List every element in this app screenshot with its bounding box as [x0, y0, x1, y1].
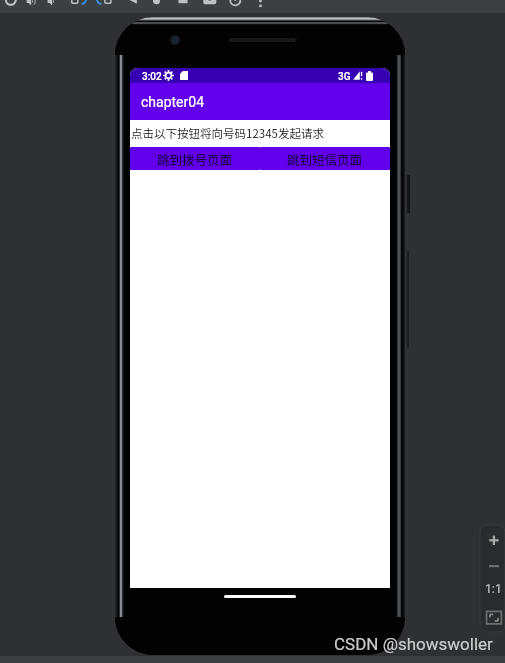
button[interactable]: 跳到拨号页面 [130, 147, 260, 170]
staticText: 3G [338, 71, 351, 83]
button[interactable]: Power [2, 0, 20, 13]
staticText: 跳到短信页面 [287, 150, 363, 168]
button[interactable]: Zoom out [485, 557, 503, 575]
staticText: CSDN @showswoller [334, 634, 493, 654]
button[interactable]: Record [226, 0, 244, 13]
staticText: 点击以下按钮将向号码12345发起请求 [131, 125, 324, 142]
button[interactable]: Screenshot [201, 0, 219, 13]
button[interactable]: Volume up [22, 0, 40, 13]
button[interactable]: Volume down [43, 0, 61, 13]
staticText: chapter04 [141, 94, 204, 110]
button[interactable]: 跳到短信页面 [260, 147, 390, 170]
staticText: 3:02 [142, 71, 162, 83]
button[interactable]: 1:1 [483, 580, 504, 597]
button[interactable]: Rotate left [70, 0, 88, 13]
button[interactable]: Fit to screen [486, 611, 502, 625]
button[interactable]: Zoom in [485, 531, 503, 549]
button[interactable]: More [252, 0, 270, 13]
button[interactable]: Back [123, 0, 141, 13]
button[interactable]: Overview [174, 0, 192, 13]
staticText: 1:1 [485, 582, 502, 596]
button[interactable]: Home [148, 0, 166, 13]
staticText: 跳到拨号页面 [157, 150, 233, 168]
button[interactable]: Rotate right [95, 0, 113, 13]
